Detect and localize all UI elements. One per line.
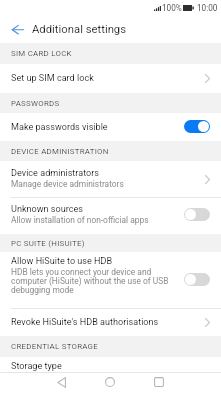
staticText: SIM CARD LOCK: [11, 49, 72, 58]
button[interactable]: Unknown sources: [0, 197, 221, 234]
staticText: 10:00: [197, 3, 218, 13]
button[interactable]: Back: [0, 16, 35, 43]
staticText: Set up SIM card lock: [11, 73, 94, 84]
button[interactable]: Revoke HiSuite's HDB authorisations: [0, 308, 221, 336]
button[interactable]: Set up SIM card lock: [0, 64, 221, 93]
staticText: Additional settings: [32, 23, 127, 36]
staticText: PASSWORDS: [11, 99, 60, 108]
staticText: Allow installation of non-official apps: [11, 215, 149, 225]
staticText: Storage type: [11, 361, 62, 372]
button[interactable]: Back: [47, 371, 75, 393]
button[interactable]: Device administrators: [0, 161, 221, 197]
staticText: Device administrators: [11, 168, 100, 179]
staticText: Make passwords visible: [11, 122, 108, 133]
button[interactable]: Allow HiSuite to use HDB: [0, 252, 221, 308]
staticText: PC SUITE (HISUITE): [11, 239, 85, 248]
staticText: Allow HiSuite to use HDB: [11, 256, 113, 267]
button[interactable]: Make passwords visible: [0, 113, 221, 141]
staticText: Revoke HiSuite's HDB authorisations: [11, 317, 159, 328]
staticText: Unknown sources: [11, 204, 84, 215]
staticText: Manage device administrators: [11, 179, 124, 189]
button[interactable]: Recent apps: [145, 371, 173, 393]
staticText: DEVICE ADMINISTRATION: [11, 147, 109, 156]
staticText: 100%: [162, 3, 182, 13]
staticText: HDB lets you connect your device and com…: [11, 267, 178, 295]
button[interactable]: Home: [96, 371, 124, 393]
staticText: CREDENTIAL STORAGE: [11, 342, 98, 351]
button[interactable]: Storage type: [0, 357, 221, 372]
